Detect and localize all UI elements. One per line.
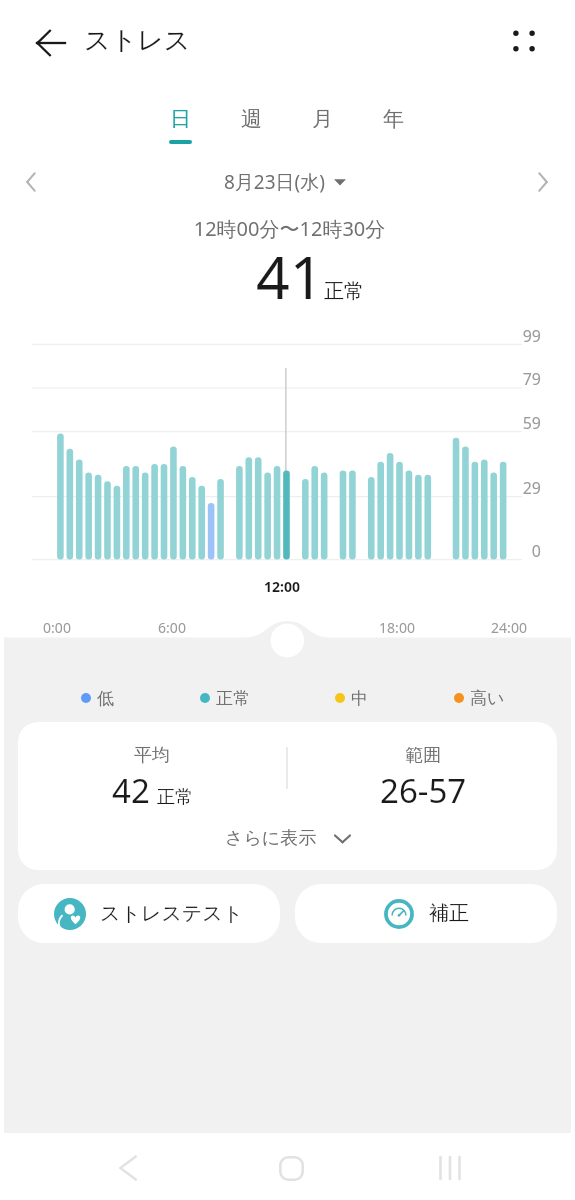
staticText: 低 [97, 688, 114, 709]
button[interactable]: 月 [289, 92, 355, 152]
button[interactable]: 低 [81, 687, 114, 709]
button[interactable]: 高い [454, 687, 505, 709]
staticText: 8月23日(水) [224, 169, 326, 195]
button[interactable]: Recent apps [422, 1140, 478, 1196]
button[interactable]: ストレステスト [18, 884, 280, 943]
button[interactable]: 正常 [200, 687, 250, 709]
staticText: 26-57 [380, 768, 467, 813]
button[interactable]: More options [501, 18, 547, 64]
button[interactable]: Home [263, 1140, 319, 1196]
staticText: 12:00 [232, 577, 332, 596]
staticText: 59 [481, 412, 541, 434]
button[interactable]: 週 [218, 92, 284, 152]
staticText: 99 [481, 325, 541, 347]
staticText: 24:00 [459, 618, 559, 637]
staticText: 29 [481, 477, 541, 499]
staticText: 0 [481, 540, 541, 562]
staticText: ストレステスト [100, 901, 244, 926]
staticText: 6:00 [122, 618, 222, 637]
staticText: 高い [470, 688, 505, 709]
staticText: 週 [241, 106, 262, 132]
button[interactable]: Next day [520, 160, 564, 204]
staticText: 18:00 [347, 618, 447, 637]
button[interactable]: Back [27, 19, 74, 66]
button[interactable]: Previous day [10, 160, 54, 204]
button[interactable]: 補正 [295, 884, 557, 943]
staticText: 年 [383, 106, 404, 132]
button[interactable]: 年 [360, 92, 426, 152]
button[interactable]: 中 [335, 687, 368, 709]
staticText: 79 [481, 368, 541, 390]
button[interactable]: 日 [147, 92, 213, 152]
staticText: 正常 [216, 688, 250, 709]
staticText: 日 [170, 106, 191, 132]
staticText: 12時00分〜12時30分 [2, 215, 575, 242]
staticText: ストレス [84, 24, 191, 57]
button[interactable]: Back [100, 1140, 156, 1196]
staticText: 中 [351, 688, 368, 709]
staticText: 正常 [157, 786, 193, 809]
staticText: 41 [256, 236, 324, 316]
staticText: 0:00 [7, 618, 107, 637]
button[interactable]: さらに表示 [168, 820, 408, 856]
staticText: 範囲 [405, 744, 441, 767]
staticText: 正常 [324, 279, 364, 304]
button[interactable]: 8月23日(水) [214, 164, 356, 200]
staticText: 平均 [134, 744, 170, 767]
staticText: 42 [112, 768, 150, 813]
staticText: 補正 [429, 901, 469, 926]
staticText: さらに表示 [225, 827, 317, 850]
staticText: 月 [312, 106, 333, 132]
